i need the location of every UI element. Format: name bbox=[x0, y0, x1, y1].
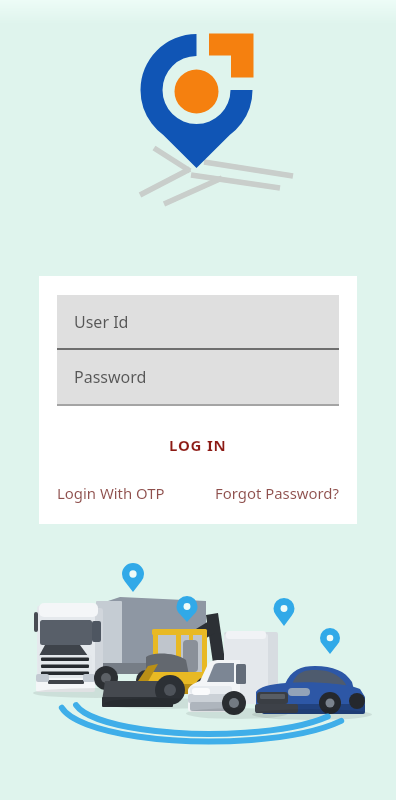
button[interactable]: Forgot Password? bbox=[215, 483, 339, 503]
staticText: User Id bbox=[74, 311, 129, 333]
button[interactable]: Login With OTP bbox=[57, 483, 165, 503]
staticText: LOG IN bbox=[169, 435, 227, 455]
staticText: Login With OTP bbox=[57, 483, 165, 503]
button[interactable]: Password bbox=[57, 350, 339, 404]
button[interactable]: LOG IN bbox=[39, 435, 357, 455]
staticText: Password bbox=[74, 366, 147, 388]
staticText: Forgot Password? bbox=[215, 483, 339, 503]
button[interactable]: User Id bbox=[57, 295, 339, 348]
